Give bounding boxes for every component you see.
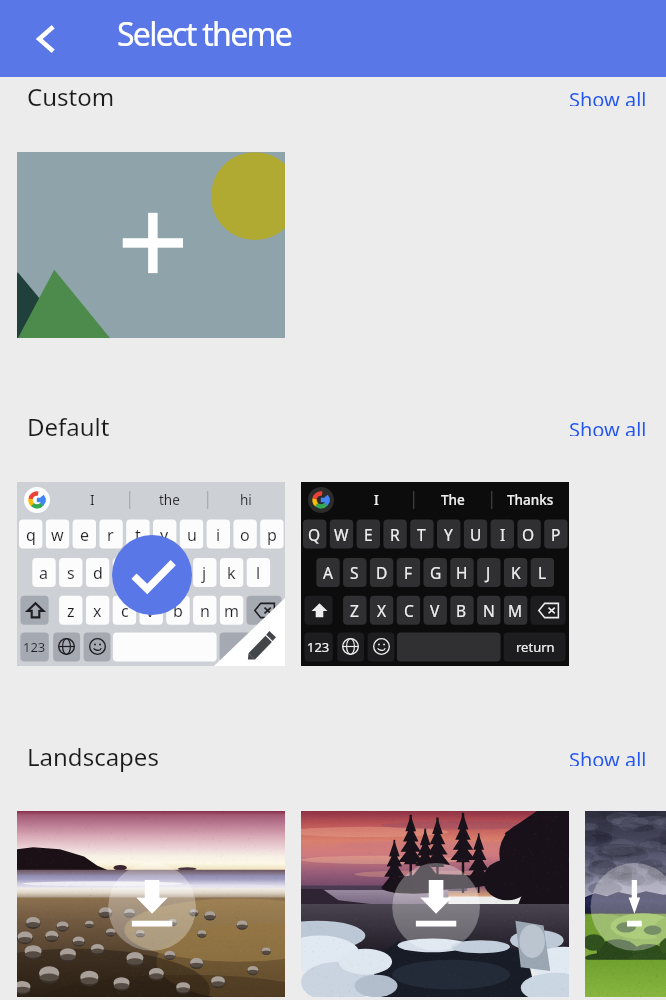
staticText: Show all xyxy=(569,746,647,766)
staticText: P xyxy=(551,524,561,545)
staticText: e xyxy=(80,524,90,546)
staticText: T xyxy=(417,524,426,545)
staticText: g xyxy=(147,562,157,584)
staticText: O xyxy=(522,524,535,545)
staticText: Custom xyxy=(27,80,115,113)
staticText: I xyxy=(500,524,506,545)
button[interactable]: Landscape theme xyxy=(17,811,285,997)
staticText: d xyxy=(93,562,103,584)
staticText: R xyxy=(390,524,400,545)
staticText: F xyxy=(404,562,413,583)
staticText: j xyxy=(202,562,207,584)
staticText: The xyxy=(441,491,465,509)
button[interactable]: Back xyxy=(20,13,72,65)
staticText: 123 xyxy=(307,638,330,656)
staticText: Y xyxy=(444,524,453,545)
staticText: a xyxy=(39,562,48,584)
staticText: C xyxy=(404,600,414,621)
button[interactable]: Show all xyxy=(547,77,666,115)
button[interactable]: Light keyboard theme xyxy=(17,482,285,666)
button[interactable]: Show all xyxy=(547,407,666,445)
staticText: X xyxy=(377,600,387,621)
staticText: v xyxy=(146,600,155,622)
staticText: S xyxy=(350,562,359,583)
staticText: K xyxy=(511,562,521,583)
staticText: Thanks xyxy=(507,491,554,509)
staticText: U xyxy=(470,524,482,545)
staticText: p xyxy=(267,524,277,546)
staticText: W xyxy=(334,524,349,545)
staticText: the xyxy=(159,491,180,509)
staticText: Show all xyxy=(569,86,647,106)
staticText: o xyxy=(240,524,250,546)
staticText: I xyxy=(374,491,379,509)
staticText: D xyxy=(376,562,388,583)
staticText: r xyxy=(107,524,114,546)
staticText: L xyxy=(538,562,547,583)
staticText: return xyxy=(516,638,555,656)
staticText: H xyxy=(456,562,468,583)
staticText: m xyxy=(224,600,239,622)
staticText: c xyxy=(121,600,129,622)
staticText: E xyxy=(364,524,373,545)
button[interactable]: Landscape theme xyxy=(585,811,666,997)
staticText: A xyxy=(323,562,333,583)
staticText: k xyxy=(227,562,236,584)
staticText: i xyxy=(216,524,221,546)
staticText: Select theme xyxy=(117,12,292,56)
staticText: q xyxy=(26,524,36,546)
button[interactable]: Dark keyboard theme xyxy=(301,482,569,666)
staticText: s xyxy=(67,562,75,584)
staticText: w xyxy=(51,524,64,546)
staticText: hi xyxy=(240,491,252,509)
staticText: t xyxy=(135,524,141,546)
button[interactable]: Show all xyxy=(547,737,666,775)
staticText: M xyxy=(508,600,523,621)
staticText: Show all xyxy=(569,416,647,436)
staticText: V xyxy=(430,600,440,621)
staticText: l xyxy=(256,562,261,584)
staticText: G xyxy=(430,562,442,583)
staticText: z xyxy=(67,600,75,622)
staticText: Default xyxy=(27,410,110,443)
staticText: Landscapes xyxy=(27,740,159,773)
staticText: Z xyxy=(350,600,359,621)
staticText: n xyxy=(200,600,210,622)
button[interactable]: Add custom theme xyxy=(17,152,285,338)
staticText: 123 xyxy=(23,638,46,656)
staticText: Q xyxy=(308,524,321,545)
staticText: y xyxy=(160,524,169,546)
button[interactable]: Landscape theme xyxy=(301,811,569,997)
staticText: h xyxy=(173,562,183,584)
staticText: u xyxy=(187,524,197,546)
staticText: b xyxy=(173,600,183,622)
staticText: I xyxy=(90,491,95,509)
staticText: x xyxy=(93,600,102,622)
staticText: B xyxy=(456,600,467,621)
staticText: J xyxy=(486,562,491,583)
staticText: N xyxy=(483,600,495,621)
